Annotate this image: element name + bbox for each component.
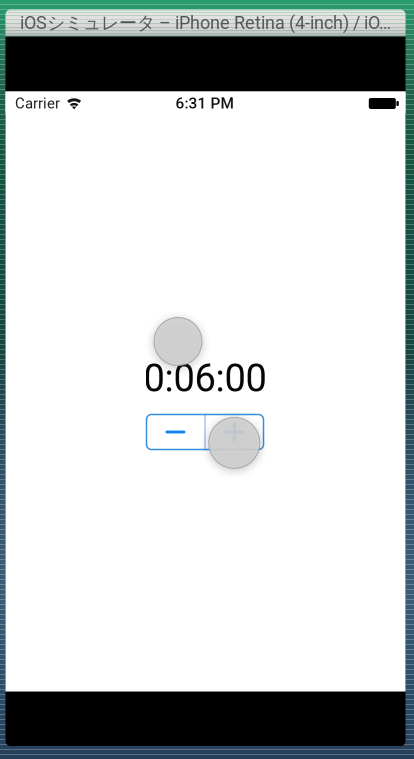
- staticText: Carrier: [15, 94, 60, 112]
- button[interactable]: Stepper, decrement or increment: [146, 414, 263, 449]
- staticText: iOSシミュレータ – iPhone Retina (4-inch) / iO…: [20, 12, 391, 34]
- staticText: 0:06:00: [143, 356, 266, 401]
- staticText: 6:31 PM: [175, 94, 233, 112]
